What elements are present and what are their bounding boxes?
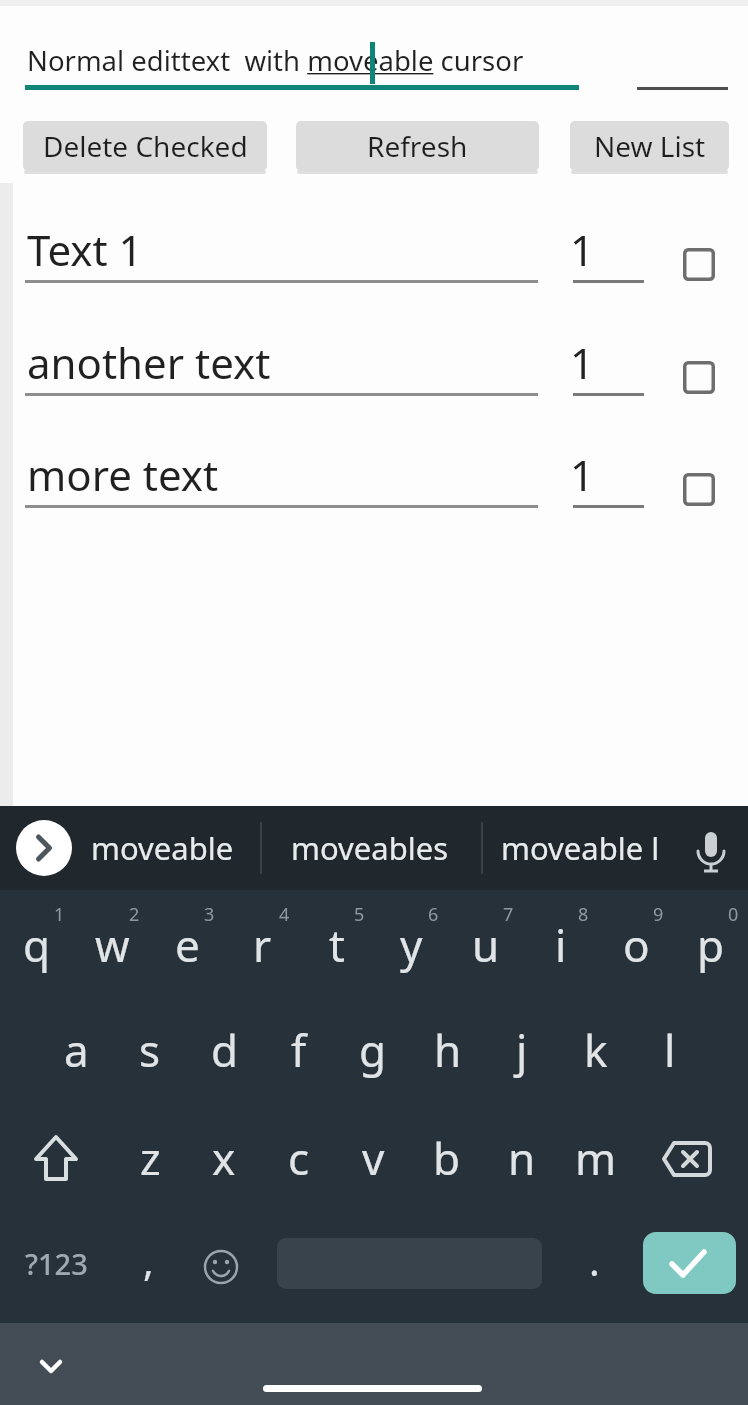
button[interactable]: v [336,1105,410,1211]
button[interactable]: w [75,892,149,998]
button[interactable]: more text [25,442,538,512]
button[interactable]: q [0,892,74,998]
staticText: h [434,1020,462,1080]
button[interactable]: moveable l [482,806,678,890]
button[interactable] [648,1119,728,1199]
staticText: more text [27,446,219,503]
button[interactable]: n [485,1105,559,1211]
button[interactable]: f [262,997,336,1103]
staticText: k [584,1020,608,1080]
staticText: o [623,915,650,975]
button[interactable]: Normal edittext with moveable cursor [25,30,578,90]
staticText: moveables [291,827,449,869]
button[interactable]: moveable [72,806,252,890]
button[interactable]: d [188,997,262,1103]
button[interactable]: l [633,997,707,1103]
staticText: l [664,1020,676,1080]
button[interactable]: Delete Checked [23,121,267,171]
staticText: New List [594,127,706,165]
staticText: 6 [428,902,439,927]
button[interactable]: s [113,997,187,1103]
button[interactable] [643,1232,736,1294]
button[interactable]: c [262,1105,336,1211]
button[interactable]: Text 1 [25,217,538,287]
staticText: Refresh [367,127,468,165]
staticText: a [64,1020,89,1080]
staticText: 8 [578,902,589,927]
button[interactable] [678,468,720,510]
staticText: 0 [728,902,739,927]
button[interactable]: . [564,1220,624,1300]
button[interactable]: g [336,997,410,1103]
staticText: m [575,1128,617,1188]
button[interactable]: e [150,892,224,998]
staticText: moveable [91,827,234,869]
staticText: b [433,1128,461,1188]
staticText: another text [27,334,271,391]
staticText: , [143,1233,154,1287]
button[interactable]: Refresh [296,121,539,171]
staticText: . [589,1233,600,1287]
button[interactable]: , [113,1220,183,1300]
button[interactable]: b [410,1105,484,1211]
button[interactable] [686,820,738,876]
button[interactable]: moveables [270,806,470,890]
staticText: 1 [54,902,65,927]
button[interactable] [16,1118,96,1198]
staticText: i [555,915,567,975]
staticText: ?123 [25,1244,88,1283]
staticText: e [175,915,200,975]
staticText: n [508,1128,536,1188]
staticText: Delete Checked [43,127,248,165]
staticText: s [139,1020,161,1080]
button[interactable]: z [113,1105,187,1211]
button[interactable] [23,1336,79,1392]
button[interactable] [263,1385,482,1392]
staticText: t [329,915,345,975]
staticText: 2 [129,902,140,927]
button[interactable]: ?123 [6,1223,106,1303]
staticText: 3 [204,902,215,927]
staticText: 1 [570,446,595,503]
button[interactable]: x [187,1105,261,1211]
staticText: q [23,915,51,975]
staticText: v [362,1128,385,1188]
button[interactable]: t [300,892,374,998]
staticText: f [291,1020,307,1080]
button[interactable]: a [39,997,113,1103]
staticText: r [253,915,272,975]
staticText: 4 [279,902,290,927]
staticText: y [400,915,423,975]
button[interactable]: j [485,997,559,1103]
button[interactable] [678,356,720,398]
button[interactable] [185,1223,257,1303]
button[interactable]: r [225,892,299,998]
staticText: u [472,915,500,975]
staticText: moveable l [501,827,660,869]
button[interactable] [678,243,720,285]
staticText: Normal edittext with moveable cursor [27,42,524,79]
staticText: 1 [570,334,595,391]
button[interactable]: k [559,997,633,1103]
staticText: 9 [653,902,664,927]
button[interactable]: h [411,997,485,1103]
staticText: p [697,915,725,975]
button[interactable]: i [524,892,598,998]
button[interactable] [16,820,72,876]
button[interactable]: another text [25,330,538,400]
button[interactable]: y [374,892,448,998]
button[interactable]: u [449,892,523,998]
staticText: j [516,1020,528,1080]
staticText: 7 [503,902,514,927]
staticText: x [212,1128,236,1188]
staticText: c [288,1128,310,1188]
staticText: z [140,1128,161,1188]
staticText: g [359,1020,387,1080]
button[interactable]: o [599,892,673,998]
staticText: w [95,915,130,975]
button[interactable]: p [674,892,748,998]
button[interactable]: m [559,1105,633,1211]
button[interactable]: New List [570,121,729,171]
staticText: 5 [354,902,365,927]
